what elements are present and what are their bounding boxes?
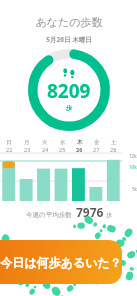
staticText: 日 xyxy=(6,139,12,146)
staticText: 12k xyxy=(129,153,137,159)
staticText: 28 xyxy=(110,146,117,153)
staticText: 25 xyxy=(59,146,66,153)
staticText: 歩 xyxy=(106,211,112,219)
staticText: 5月26日 木曜日 xyxy=(46,35,92,44)
staticText: 歩 xyxy=(66,104,72,112)
staticText: 今週の平均歩数 xyxy=(26,211,72,219)
staticText: 8209 xyxy=(47,78,91,104)
staticText: 22 xyxy=(6,146,13,153)
button[interactable]: 今週の平均歩数 xyxy=(22,204,116,220)
staticText: 土 xyxy=(111,139,117,146)
staticText: 木 xyxy=(77,139,83,146)
staticText: 金 xyxy=(94,139,100,146)
button[interactable]: 8209 xyxy=(28,49,110,131)
staticText: 27 xyxy=(93,146,100,153)
staticText: 水 xyxy=(60,139,66,146)
staticText: 7976 xyxy=(76,204,104,220)
staticText: 26 xyxy=(76,146,83,153)
staticText: 火 xyxy=(42,139,48,146)
staticText: 24 xyxy=(42,146,49,153)
staticText: あなたの歩数 xyxy=(35,15,103,29)
staticText: 23 xyxy=(24,146,31,153)
staticText: 10k xyxy=(129,164,137,170)
staticText: 5k xyxy=(132,186,137,192)
staticText: 今日は何歩あるいた？ xyxy=(0,255,122,270)
button[interactable]: 今日は何歩あるいた？ xyxy=(0,240,122,284)
staticText: 月 xyxy=(24,139,30,146)
